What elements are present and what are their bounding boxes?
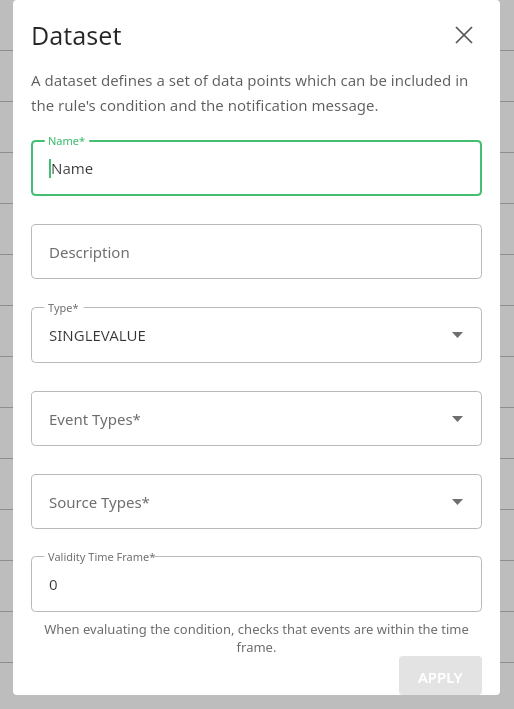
button[interactable]: Validity Time Frame* xyxy=(31,556,482,612)
staticText: 0 xyxy=(49,574,58,594)
staticText: Name* xyxy=(48,133,86,148)
staticText: When evaluating the condition, checks th… xyxy=(31,620,482,656)
staticText: Type* xyxy=(48,300,79,315)
button[interactable]: Name* xyxy=(31,140,482,196)
staticText: Source Types* xyxy=(49,492,150,512)
button[interactable]: Close xyxy=(446,17,482,53)
staticText: Name xyxy=(51,158,94,178)
button[interactable]: Event Types* xyxy=(31,391,482,446)
staticText: Validity Time Frame* xyxy=(48,549,156,564)
button[interactable]: Description xyxy=(31,224,482,279)
staticText: Dataset xyxy=(31,18,122,52)
staticText: APPLY xyxy=(418,667,463,684)
staticText: SINGLEVALUE xyxy=(49,325,146,345)
button[interactable]: Source Types* xyxy=(31,474,482,529)
button[interactable]: Type* xyxy=(31,307,482,363)
staticText: Event Types* xyxy=(49,409,141,429)
button[interactable]: APPLY xyxy=(399,656,482,695)
staticText: Description xyxy=(49,242,130,262)
staticText: A dataset defines a set of data points w… xyxy=(31,70,482,115)
